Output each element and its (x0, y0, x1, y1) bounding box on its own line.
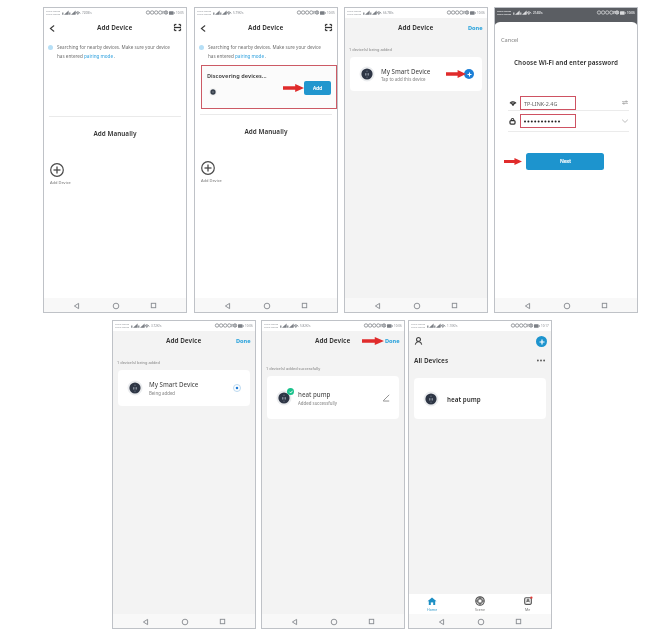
staticText: 73% (313, 11, 319, 15)
staticText: Done (468, 24, 483, 32)
staticText: Searching for nearby devices. Make sure … (57, 44, 170, 50)
button[interactable]: Home (328, 616, 339, 627)
staticText: . (265, 53, 267, 59)
button[interactable]: Add (304, 81, 331, 95)
button[interactable]: Recents (449, 300, 460, 311)
button[interactable]: Done (236, 337, 251, 345)
staticText: 10:17 (541, 324, 549, 328)
staticText: 73% (613, 11, 619, 15)
staticText: 1.10K/s (447, 324, 458, 328)
button[interactable]: More (536, 355, 546, 365)
staticText: China Mobile (264, 326, 279, 329)
button[interactable]: Back (46, 22, 58, 34)
button[interactable]: Recents (148, 300, 159, 311)
staticText: China Mobile (197, 10, 212, 13)
staticText: 73% (380, 324, 386, 328)
button[interactable]: Home (261, 300, 272, 311)
staticText: 5.82K/s (300, 324, 311, 328)
staticText: Cancel (501, 36, 519, 44)
staticText: TP-LINK-2.4G (524, 100, 558, 107)
staticText: 2140/s (533, 11, 543, 15)
staticText: Discovering devices... (207, 72, 267, 80)
staticText: China Mobile (347, 10, 362, 13)
staticText: China Mobile (115, 326, 130, 329)
button[interactable]: Recents (513, 616, 524, 627)
staticText: China Mobile (411, 323, 426, 326)
staticText: China Mobile (115, 323, 130, 326)
button[interactable]: Me (504, 594, 552, 614)
staticText: 73% (162, 11, 168, 15)
staticText: Being added (149, 390, 176, 396)
staticText: China Mobile (497, 13, 512, 16)
staticText: Choose Wi-Fi and enter password (494, 58, 638, 67)
staticText: Home (427, 607, 438, 612)
button[interactable]: Back (140, 616, 151, 627)
button[interactable]: Back (222, 300, 233, 311)
staticText: China Mobile (46, 10, 61, 13)
staticText: Add (313, 85, 323, 92)
button[interactable]: Home (411, 300, 422, 311)
button[interactable]: Home (475, 616, 486, 627)
staticText: 10:06 (245, 324, 253, 328)
staticText: Add Device (201, 178, 222, 183)
button[interactable]: Add device (536, 336, 547, 347)
staticText: 10:06 (394, 324, 402, 328)
staticText: 1 device(s) added successfully (266, 366, 321, 371)
button[interactable]: My Smart Device (350, 57, 482, 91)
staticText: Added successfully (298, 400, 337, 406)
button[interactable]: Recents (299, 300, 310, 311)
button[interactable]: Scan (323, 22, 334, 33)
button[interactable]: Recents (366, 616, 377, 627)
button[interactable]: Cancel (501, 36, 519, 44)
staticText: Next (560, 158, 571, 165)
button[interactable]: My Smart Device (118, 370, 250, 406)
staticText: China Mobile (347, 13, 362, 16)
staticText: 10:05 (176, 11, 184, 15)
button[interactable]: Home (408, 594, 456, 614)
staticText: . (114, 53, 116, 59)
button[interactable]: Profile (412, 335, 424, 347)
staticText: Add Device (50, 180, 71, 185)
staticText: heat pump (298, 390, 331, 398)
staticText: 1 device(s) being added (349, 47, 392, 52)
staticText: 10:06 (477, 11, 485, 15)
staticText: Add Manually (43, 129, 187, 138)
staticText: China Mobile (46, 13, 61, 16)
button[interactable]: Scan (172, 22, 183, 33)
button[interactable]: Back (289, 616, 300, 627)
button[interactable]: Done (468, 24, 483, 32)
staticText: has entered (208, 53, 235, 59)
staticText: Add Device (97, 23, 133, 32)
button[interactable]: Back (197, 22, 209, 34)
button[interactable]: Back (372, 300, 383, 311)
staticText: 73% (231, 324, 237, 328)
button[interactable]: Home (179, 616, 190, 627)
button[interactable]: Add Device (50, 163, 71, 185)
button[interactable]: Recents (599, 300, 610, 311)
button[interactable]: Next (526, 153, 604, 170)
staticText: 720B/s (82, 11, 92, 15)
button[interactable]: heat pump (267, 376, 399, 419)
button[interactable]: Recents (217, 616, 228, 627)
staticText: My Smart Device (381, 67, 431, 75)
button[interactable]: Scene (456, 594, 504, 614)
button[interactable]: Back (436, 616, 447, 627)
staticText: China Mobile (264, 323, 279, 326)
button[interactable]: heat pump (414, 378, 546, 419)
staticText: Add Device (166, 336, 202, 345)
staticText: Done (385, 337, 400, 345)
button[interactable]: Add Device (201, 161, 222, 183)
staticText: pairing mode (84, 53, 114, 59)
staticText: Tap to add this device (381, 76, 426, 82)
button[interactable]: Back (522, 300, 533, 311)
staticText: 70% (527, 324, 533, 328)
button[interactable]: Home (110, 300, 121, 311)
button[interactable]: Done (385, 337, 400, 345)
button[interactable]: Back (71, 300, 82, 311)
staticText: My Smart Device (149, 380, 199, 388)
staticText: pairing mode (235, 53, 265, 59)
staticText: 10:05 (327, 11, 335, 15)
button[interactable]: Home (561, 300, 572, 311)
staticText: China Mobile (197, 13, 212, 16)
staticText: Add Device (398, 23, 434, 32)
